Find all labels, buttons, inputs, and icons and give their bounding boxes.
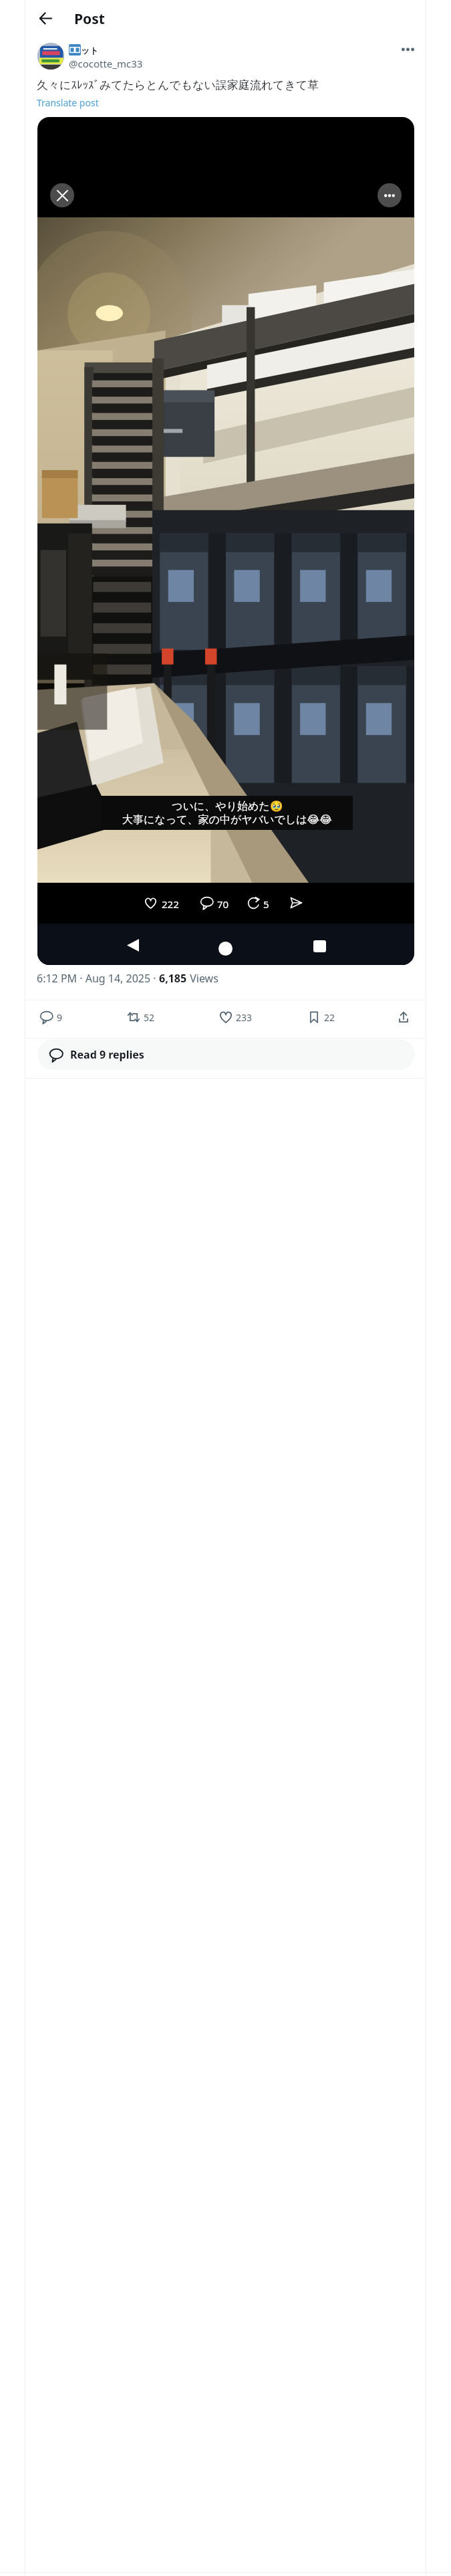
button[interactable]: Back xyxy=(31,4,59,32)
button[interactable] xyxy=(37,43,64,70)
staticText: 70 xyxy=(217,897,229,911)
staticText: 222 xyxy=(162,897,179,911)
button[interactable]: ついに、やり始めた🥹 xyxy=(37,117,414,965)
button[interactable]: More options xyxy=(394,35,422,64)
staticText: Post xyxy=(74,9,105,29)
staticText: 大事になって、家の中がヤバいでしは😂😂 xyxy=(122,813,332,827)
staticText: 6,185 xyxy=(159,971,187,986)
staticText: Views xyxy=(187,971,218,986)
staticText: 233 xyxy=(236,1011,253,1024)
staticText: 22 xyxy=(324,1011,335,1024)
staticText: 久々にｽﾚｯｽﾞみてたらとんでもない誤家庭流れてきて草 xyxy=(37,78,319,92)
staticText: ついに、やり始めた🥹 xyxy=(172,800,283,813)
button[interactable]: Bookmark xyxy=(302,1005,341,1029)
button[interactable]: Translate post xyxy=(37,96,99,109)
staticText: ット xyxy=(81,45,99,56)
staticText: Read 9 replies xyxy=(70,1047,144,1062)
staticText: 5 xyxy=(263,897,269,911)
button[interactable]: Reply xyxy=(35,1005,68,1029)
button[interactable]: More xyxy=(378,183,402,207)
staticText: 52 xyxy=(144,1011,155,1024)
staticText: 6:12 PM · Aug 14, 2025 · xyxy=(37,971,159,986)
button[interactable]: Share xyxy=(392,1005,416,1029)
button[interactable]: Read 9 replies xyxy=(37,1039,415,1070)
staticText: 9 xyxy=(57,1011,63,1024)
button[interactable]: Like xyxy=(214,1005,258,1029)
button[interactable]: Repost xyxy=(122,1005,160,1029)
button[interactable]: Close xyxy=(50,183,74,207)
staticText: @cocotte_mc33 xyxy=(69,57,143,70)
